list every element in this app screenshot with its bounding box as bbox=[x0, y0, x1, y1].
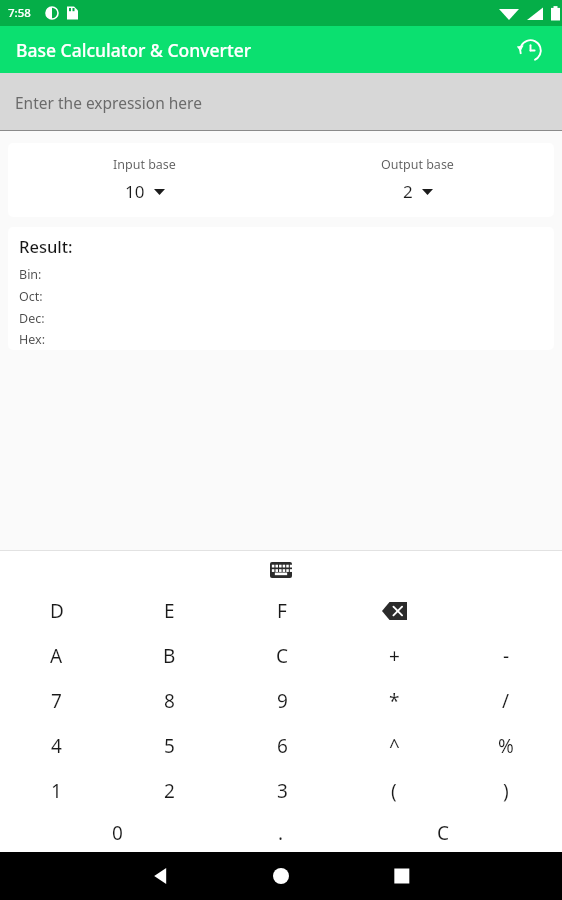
button[interactable]: History bbox=[510, 30, 550, 70]
staticText: Hex: bbox=[19, 331, 46, 348]
staticText: 0 bbox=[112, 820, 123, 846]
staticText: C bbox=[276, 643, 289, 669]
staticText: % bbox=[498, 733, 514, 759]
button[interactable]: Input base bbox=[8, 143, 281, 203]
button[interactable]: - bbox=[450, 633, 562, 678]
button[interactable]: E bbox=[113, 588, 226, 633]
button[interactable]: ( bbox=[338, 768, 450, 813]
staticText: Input base bbox=[113, 156, 176, 173]
staticText: ^ bbox=[389, 733, 400, 759]
button[interactable]: C bbox=[399, 813, 488, 852]
staticText: B bbox=[163, 643, 176, 669]
staticText: 1 bbox=[51, 778, 62, 804]
button[interactable]: Show keyboard bbox=[261, 551, 301, 588]
button[interactable]: 4 bbox=[0, 723, 113, 768]
staticText: ( bbox=[391, 778, 397, 804]
button[interactable]: F bbox=[226, 588, 338, 633]
button[interactable]: ) bbox=[450, 768, 562, 813]
button[interactable]: 8 bbox=[113, 678, 226, 723]
button[interactable]: Backspace bbox=[338, 588, 450, 633]
button[interactable]: * bbox=[338, 678, 450, 723]
staticText: E bbox=[164, 598, 175, 624]
button[interactable]: 2 bbox=[113, 768, 226, 813]
button[interactable]: 5 bbox=[113, 723, 226, 768]
staticText: A bbox=[50, 643, 63, 669]
button[interactable]: % bbox=[450, 723, 562, 768]
button[interactable]: D bbox=[0, 588, 113, 633]
staticText: F bbox=[277, 598, 287, 624]
button[interactable]: ^ bbox=[338, 723, 450, 768]
staticText: 8 bbox=[164, 688, 175, 714]
button[interactable]: 9 bbox=[226, 678, 338, 723]
staticText: 7 bbox=[51, 688, 62, 714]
button[interactable]: 6 bbox=[226, 723, 338, 768]
staticText: 2 bbox=[164, 778, 175, 804]
button[interactable]: 7 bbox=[0, 678, 113, 723]
staticText: 10 bbox=[125, 180, 145, 203]
staticText: 3 bbox=[277, 778, 288, 804]
staticText: - bbox=[503, 643, 510, 669]
button[interactable]: A bbox=[0, 633, 113, 678]
button[interactable]: / bbox=[450, 678, 562, 723]
staticText: ) bbox=[503, 778, 509, 804]
staticText: 9 bbox=[277, 688, 288, 714]
button[interactable]: 3 bbox=[226, 768, 338, 813]
staticText: + bbox=[389, 643, 400, 669]
staticText: D bbox=[50, 598, 64, 624]
staticText: Bin: bbox=[19, 266, 42, 283]
staticText: 4 bbox=[51, 733, 62, 759]
staticText: 5 bbox=[164, 733, 175, 759]
button[interactable]: 0 bbox=[73, 813, 162, 852]
staticText: Base Calculator & Converter bbox=[16, 38, 252, 62]
button[interactable]: 1 bbox=[0, 768, 113, 813]
staticText: Oct: bbox=[19, 288, 43, 305]
staticText: Output base bbox=[381, 156, 454, 173]
staticText: Result: bbox=[19, 235, 73, 257]
staticText: Dec: bbox=[19, 310, 45, 327]
button[interactable]: Output base bbox=[281, 143, 554, 203]
staticText: / bbox=[502, 688, 510, 714]
staticText: 2 bbox=[403, 180, 413, 203]
button[interactable]: . bbox=[236, 813, 325, 852]
staticText: 7:58 bbox=[8, 5, 31, 21]
button[interactable]: Enter the expression here bbox=[0, 73, 562, 131]
staticText: C bbox=[437, 820, 450, 846]
button[interactable]: + bbox=[338, 633, 450, 678]
button[interactable]: C bbox=[226, 633, 338, 678]
staticText: Enter the expression here bbox=[15, 92, 202, 113]
staticText: . bbox=[278, 820, 284, 846]
button[interactable]: B bbox=[113, 633, 226, 678]
staticText: 6 bbox=[277, 733, 288, 759]
staticText: * bbox=[389, 688, 400, 714]
